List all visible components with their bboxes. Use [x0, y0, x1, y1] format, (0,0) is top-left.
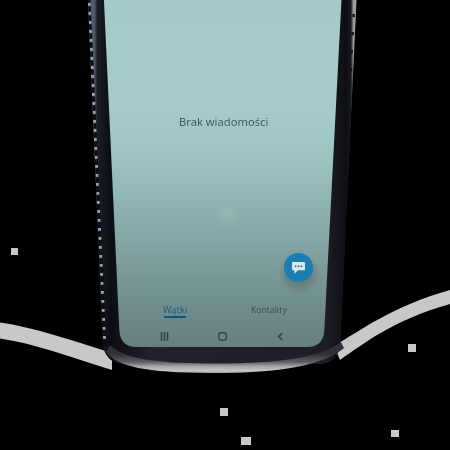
staticText: Wątki	[163, 303, 188, 315]
button[interactable]: Wątki	[147, 303, 203, 321]
staticText: Kontakty	[251, 304, 287, 316]
staticText: Brak wiadomości	[179, 114, 269, 129]
button[interactable]: Home	[210, 327, 234, 345]
button[interactable]: Nowa wiadomość	[284, 253, 313, 282]
button[interactable]: Recents	[152, 327, 176, 345]
button[interactable]: Kontakty	[238, 302, 300, 317]
button[interactable]: Back	[268, 327, 292, 345]
